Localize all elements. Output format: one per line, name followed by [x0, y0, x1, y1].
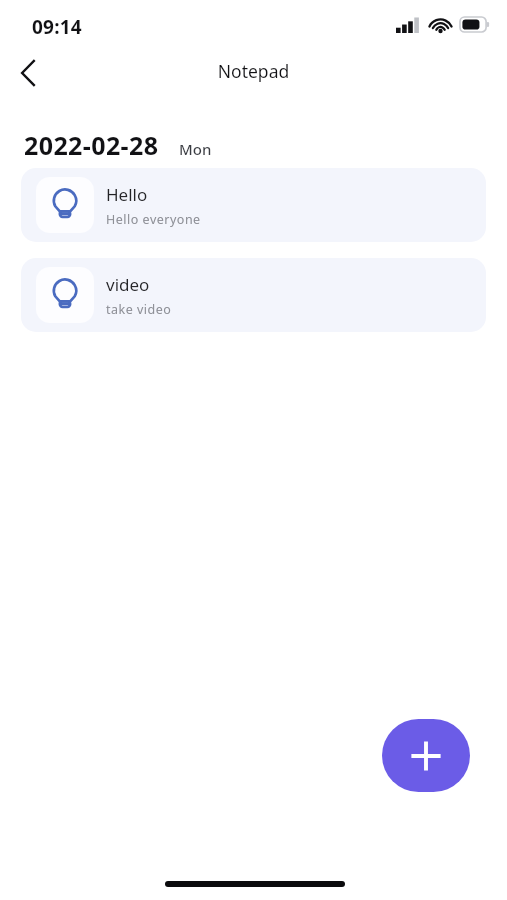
staticText: Notepad	[0, 59, 507, 83]
staticText: video	[106, 273, 150, 296]
staticText: Mon	[179, 139, 212, 159]
staticText: take video	[106, 301, 172, 318]
button[interactable]: Hello	[21, 168, 486, 242]
staticText: 2022-02-28	[24, 128, 159, 162]
staticText: Hello everyone	[106, 211, 201, 228]
button[interactable]: Add note	[382, 719, 470, 792]
button[interactable]: Back	[6, 51, 50, 95]
staticText: Hello	[106, 183, 148, 206]
button[interactable]: video	[21, 258, 486, 332]
staticText: 09:14	[32, 14, 82, 40]
